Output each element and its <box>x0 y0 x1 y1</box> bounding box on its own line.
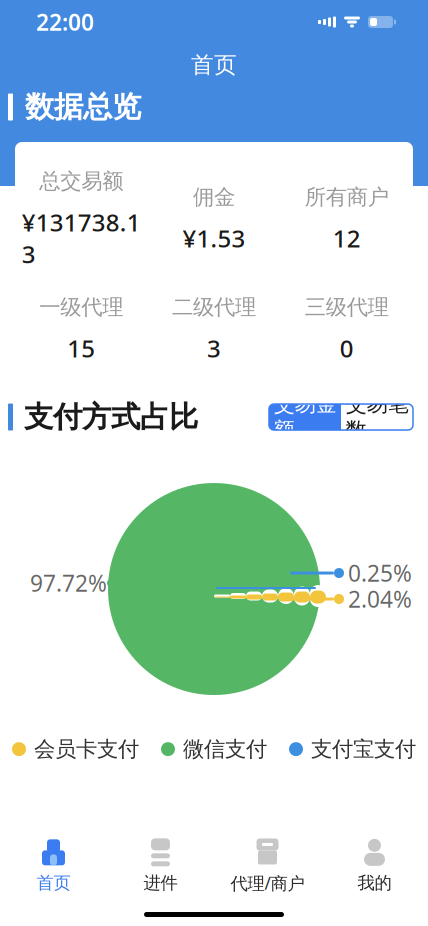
staticText: 交易笔数 <box>345 391 408 443</box>
staticText: 22:00 <box>36 7 94 37</box>
button[interactable]: 我的 <box>321 834 428 898</box>
button[interactable]: 代理/商户 <box>214 834 321 898</box>
button[interactable]: 交易金额 <box>269 404 341 430</box>
staticText: 微信支付 <box>183 736 267 762</box>
staticText: 总交易额 <box>39 168 123 194</box>
staticText: 15 <box>67 332 95 364</box>
staticText: 我的 <box>357 872 391 894</box>
staticText: 一级代理 <box>39 294 123 320</box>
button[interactable]: 首页 <box>0 834 107 898</box>
staticText: 0 <box>340 332 354 364</box>
staticText: 代理/商户 <box>230 871 304 894</box>
staticText: 所有商户 <box>305 184 389 210</box>
staticText: 二级代理 <box>172 294 256 320</box>
staticText: 0.25% <box>348 558 412 588</box>
staticText: 首页 <box>191 51 237 79</box>
staticText: 交易金额 <box>273 391 336 443</box>
staticText: 会员卡支付 <box>34 736 139 762</box>
staticText: 三级代理 <box>305 294 389 320</box>
staticText: 佣金 <box>193 184 235 210</box>
staticText: 12 <box>333 222 361 254</box>
staticText: 支付方式占比 <box>24 399 198 435</box>
staticText: 2.04% <box>348 584 412 614</box>
staticText: 支付宝支付 <box>311 736 416 762</box>
staticText: 3 <box>207 332 221 364</box>
staticText: 数据总览 <box>25 89 141 125</box>
staticText: 97.72% <box>30 568 107 598</box>
button[interactable]: 交易笔数 <box>341 404 413 430</box>
staticText: 进件 <box>143 872 177 894</box>
staticText: ¥1.53 <box>182 222 245 254</box>
button[interactable]: 进件 <box>107 834 214 898</box>
staticText: 首页 <box>36 872 70 894</box>
staticText: ¥131738.13 <box>22 206 141 270</box>
